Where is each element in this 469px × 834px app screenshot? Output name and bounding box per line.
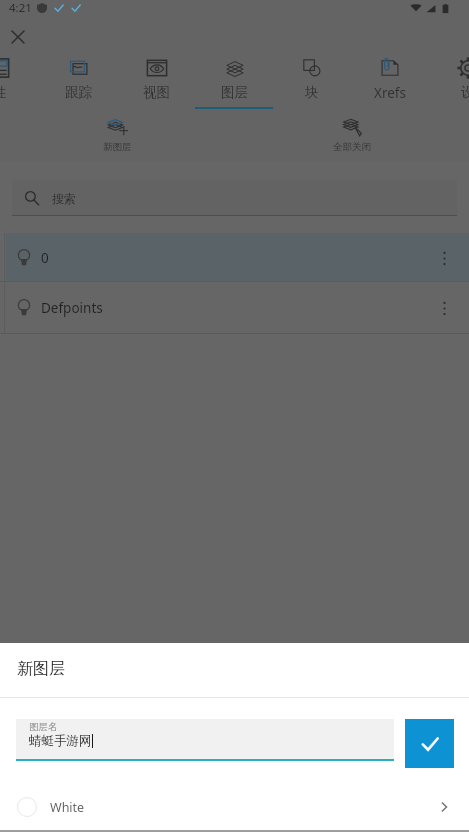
staticText: 蜻蜓手游网: [29, 733, 92, 749]
button[interactable]: 跟踪: [39, 52, 117, 109]
button[interactable]: 图层名: [16, 719, 394, 759]
button[interactable]: 视图: [117, 52, 195, 109]
staticText: White: [50, 799, 85, 816]
button[interactable]: 性: [0, 52, 39, 109]
button[interactable]: White: [0, 784, 469, 830]
button[interactable]: 搜索: [12, 180, 457, 216]
staticText: Defpoints: [41, 299, 103, 317]
staticText: 新图层: [17, 659, 65, 679]
staticText: 搜索: [52, 191, 76, 206]
staticText: 全部关闭: [333, 141, 371, 153]
staticText: 视图: [143, 84, 170, 101]
button[interactable]: 块: [273, 52, 351, 109]
button[interactable]: 新图层: [0, 109, 234, 161]
staticText: 图层名: [29, 721, 58, 733]
button[interactable]: 图层: [195, 52, 273, 109]
staticText: 性: [0, 84, 7, 101]
staticText: 0: [41, 249, 49, 267]
button[interactable]: More options: [425, 289, 463, 327]
staticText: 跟踪: [65, 84, 92, 101]
button[interactable]: 全部关闭: [234, 109, 469, 161]
staticText: Xrefs: [374, 84, 406, 102]
staticText: 图层: [221, 84, 248, 101]
button[interactable]: Close: [3, 22, 33, 52]
staticText: 块: [305, 84, 319, 101]
button[interactable]: More options: [425, 239, 463, 277]
staticText: 新图层: [103, 141, 132, 153]
button[interactable]: Confirm: [405, 719, 454, 768]
staticText: 设: [461, 84, 469, 101]
button[interactable]: 设: [429, 52, 469, 109]
button[interactable]: Xrefs: [351, 52, 429, 109]
button[interactable]: Defpoints: [0, 282, 469, 334]
staticText: 4:21: [9, 0, 32, 16]
button[interactable]: 0: [0, 233, 469, 282]
